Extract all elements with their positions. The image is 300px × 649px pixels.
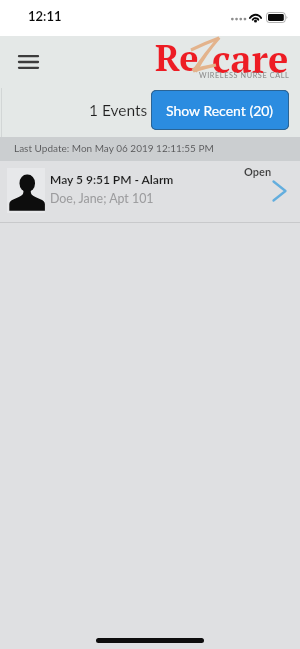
staticText: care	[212, 34, 289, 80]
staticText: 1 Events	[89, 101, 148, 120]
button[interactable]: Show Recent (20)	[152, 91, 288, 129]
staticText: Doe, Jane; Apt 101	[50, 191, 154, 206]
staticText: Open	[244, 165, 272, 178]
staticText: Show Recent (20)	[166, 102, 274, 119]
staticText: WIRELESS NURSE CALL	[199, 71, 290, 80]
staticText: 12:11	[28, 8, 62, 24]
staticText: Last Update: Mon May 06 2019 12:11:55 PM	[14, 142, 214, 154]
button[interactable]: May 5 9:51 PM - Alarm	[0, 161, 300, 222]
staticText: May 5 9:51 PM - Alarm	[50, 172, 174, 186]
staticText: Re	[155, 34, 199, 80]
button[interactable]: Menu	[9, 42, 48, 81]
